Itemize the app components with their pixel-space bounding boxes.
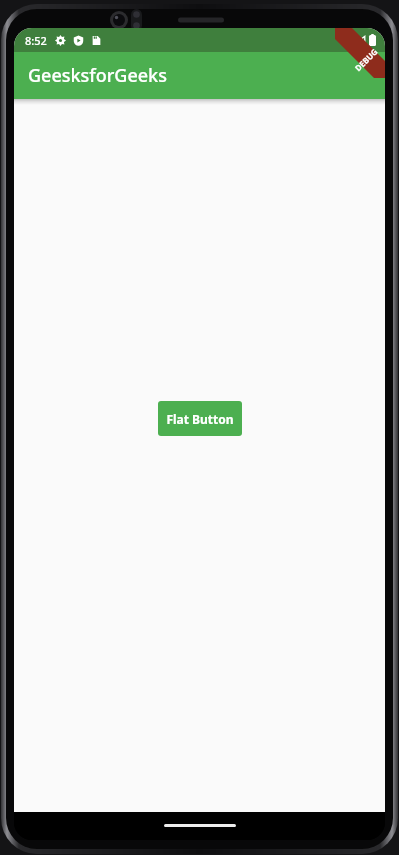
staticText: Flat Button <box>166 411 234 427</box>
staticText: 8:52 <box>25 33 47 48</box>
staticText: GeesksforGeeks <box>28 63 167 88</box>
other: Debug banner <box>335 28 385 78</box>
staticText: DEBUG <box>352 46 380 73</box>
button[interactable]: Flat Button <box>158 401 242 436</box>
